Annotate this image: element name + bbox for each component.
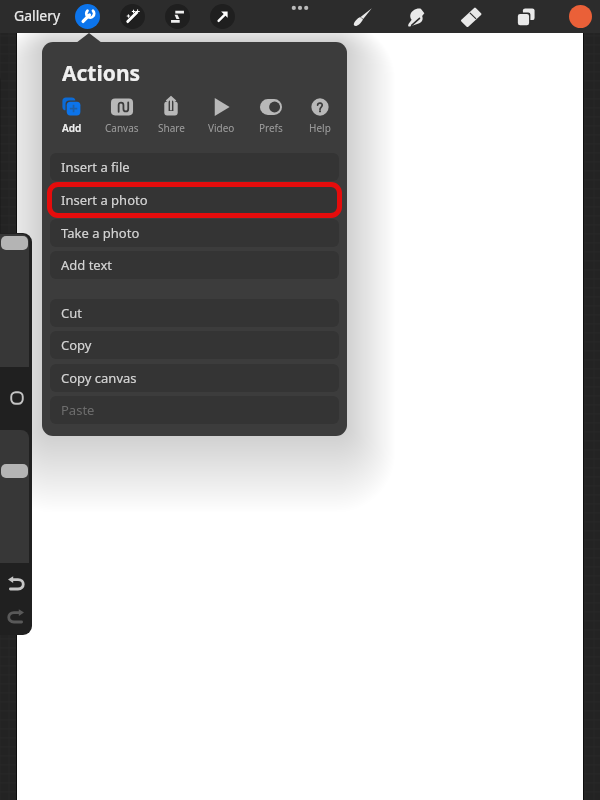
staticText: Cut	[61, 304, 82, 322]
staticText: Add text	[61, 256, 113, 274]
button[interactable]: Undo	[6, 573, 26, 593]
button[interactable]: Copy	[50, 331, 339, 359]
staticText: Video	[208, 121, 235, 135]
staticText: Gallery	[14, 6, 61, 25]
button[interactable]: Modify	[9, 390, 25, 406]
button[interactable]: Copy canvas	[50, 364, 339, 392]
staticText: Help	[309, 121, 331, 135]
button[interactable]: Opacity	[0, 430, 29, 563]
button[interactable]: Help	[296, 95, 344, 135]
staticText: Canvas	[105, 121, 139, 135]
staticText: Copy	[61, 336, 92, 354]
button[interactable]: Share	[147, 95, 195, 135]
button[interactable]: Paste	[50, 396, 339, 424]
staticText: Prefs	[259, 121, 283, 135]
staticText: Actions	[62, 59, 141, 88]
button[interactable]: Eraser	[458, 4, 484, 30]
button[interactable]: More	[288, 0, 312, 20]
staticText: Take a photo	[61, 224, 140, 242]
staticText: Copy canvas	[61, 369, 137, 387]
button[interactable]: Canvas	[98, 95, 146, 135]
button[interactable]: Layers	[513, 4, 539, 30]
button[interactable]: Redo	[6, 606, 26, 626]
button[interactable]: Adjustments	[120, 4, 145, 29]
button[interactable]: Add	[48, 95, 96, 135]
staticText: Insert a file	[61, 158, 130, 176]
button[interactable]: Brush	[350, 4, 376, 30]
button[interactable]: Selection	[165, 4, 190, 29]
button[interactable]: Insert a photo	[50, 186, 339, 214]
button[interactable]: Video	[197, 95, 245, 135]
button[interactable]: Actions	[75, 4, 100, 29]
button[interactable]: Cut	[50, 299, 339, 327]
button[interactable]: Colour	[569, 5, 592, 28]
button[interactable]: Transform	[210, 4, 235, 29]
button[interactable]: Add text	[50, 251, 339, 279]
button[interactable]: Brush size	[0, 234, 29, 367]
button[interactable]: Gallery	[14, 6, 61, 25]
button[interactable]: Take a photo	[50, 219, 339, 247]
button[interactable]: Prefs	[247, 95, 295, 135]
staticText: Add	[62, 121, 82, 135]
staticText: Share	[158, 121, 185, 135]
staticText: Paste	[61, 401, 95, 419]
button[interactable]: Smudge	[403, 4, 429, 30]
button[interactable]: Insert a file	[50, 153, 339, 181]
staticText: Insert a photo	[61, 191, 148, 209]
